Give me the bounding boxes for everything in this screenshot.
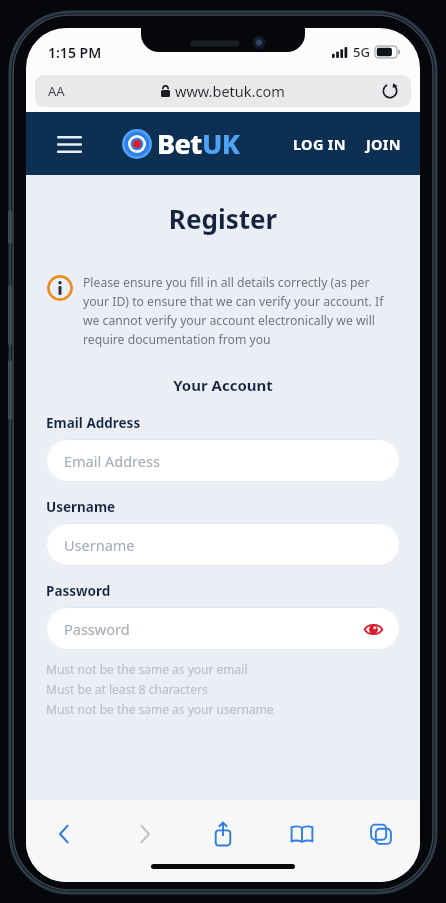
button[interactable]: Password	[46, 607, 400, 650]
staticText: JOIN	[366, 134, 401, 154]
button[interactable]: Reload	[379, 80, 401, 102]
staticText: Must not be the same as your email	[46, 661, 248, 677]
staticText: Your Account	[26, 375, 420, 395]
staticText: Password	[64, 619, 130, 639]
button[interactable]: Back	[26, 814, 104, 854]
button[interactable]: AA	[35, 75, 411, 107]
staticText: Register	[26, 201, 420, 236]
button[interactable]: Menu	[52, 127, 86, 161]
staticText: LOG IN	[293, 134, 346, 154]
staticText: Bet	[157, 125, 202, 162]
staticText: Username	[64, 535, 135, 555]
button[interactable]: Show password	[360, 616, 386, 642]
button[interactable]: Tabs	[341, 814, 420, 854]
staticText: UK	[202, 125, 240, 162]
staticText: Username	[46, 498, 116, 516]
button[interactable]: Bet	[122, 125, 240, 162]
button[interactable]: Email Address	[46, 439, 400, 482]
button[interactable]: Username	[46, 523, 400, 566]
staticText: Must not be the same as your username	[46, 701, 274, 717]
staticText: Password	[46, 582, 111, 600]
staticText: 5G	[353, 43, 370, 61]
staticText: AA	[48, 82, 65, 100]
staticText: Must be at least 8 characters	[46, 681, 208, 697]
button[interactable]: Forward	[104, 814, 183, 854]
staticText: Email Address	[46, 414, 141, 432]
button[interactable]: Share	[183, 814, 262, 854]
staticText: Email Address	[64, 451, 160, 471]
staticText: Please ensure you fill in all details co…	[83, 274, 394, 347]
button[interactable]: JOIN	[361, 127, 406, 161]
button[interactable]: LOG IN	[288, 127, 351, 161]
button[interactable]: Bookmarks	[262, 814, 341, 854]
staticText: 1:15 PM	[48, 43, 102, 62]
staticText: www.betuk.com	[175, 81, 285, 101]
